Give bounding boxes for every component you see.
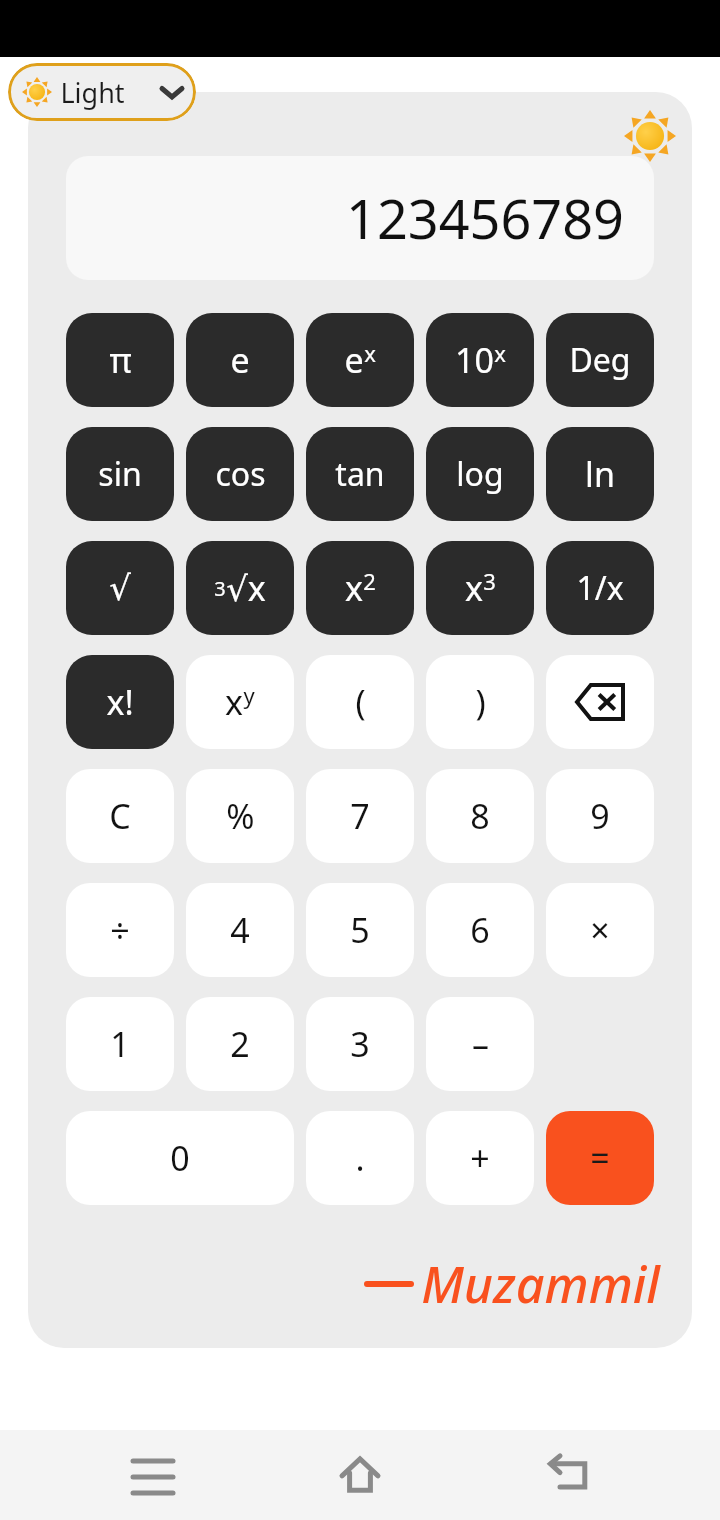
staticText: 3 bbox=[350, 1021, 370, 1067]
button[interactable]: log bbox=[426, 427, 534, 521]
staticText: – bbox=[472, 1021, 489, 1067]
staticText: √x bbox=[226, 565, 266, 611]
button[interactable]: tan bbox=[306, 427, 414, 521]
staticText: C bbox=[109, 793, 131, 839]
button[interactable]: π bbox=[66, 313, 174, 407]
button[interactable]: e bbox=[306, 313, 414, 407]
staticText: 2 bbox=[363, 566, 376, 596]
button[interactable]: √ bbox=[66, 541, 174, 635]
button[interactable]: 3 bbox=[306, 997, 414, 1091]
button[interactable]: sin bbox=[66, 427, 174, 521]
staticText: x bbox=[364, 338, 376, 368]
staticText: y bbox=[243, 680, 255, 710]
button[interactable]: C bbox=[66, 769, 174, 863]
staticText: x bbox=[494, 338, 506, 368]
staticText: Light bbox=[60, 74, 125, 111]
staticText: √ bbox=[109, 568, 131, 608]
button[interactable]: cos bbox=[186, 427, 294, 521]
staticText: x bbox=[465, 565, 483, 611]
button[interactable]: 1/x bbox=[546, 541, 654, 635]
staticText: Deg bbox=[569, 338, 631, 382]
staticText: e bbox=[230, 337, 250, 383]
button[interactable]: 4 bbox=[186, 883, 294, 977]
button[interactable]: Deg bbox=[546, 313, 654, 407]
staticText: = bbox=[590, 1135, 610, 1181]
button[interactable]: e bbox=[186, 313, 294, 407]
button[interactable]: = bbox=[546, 1111, 654, 1205]
staticText: 2 bbox=[230, 1021, 250, 1067]
button[interactable]: x bbox=[186, 655, 294, 749]
staticText: 10 bbox=[455, 337, 494, 383]
staticText: Muzammil bbox=[421, 1250, 660, 1318]
staticText: % bbox=[226, 793, 255, 839]
staticText: sin bbox=[98, 452, 142, 496]
staticText: π bbox=[109, 337, 132, 383]
staticText: x bbox=[225, 679, 243, 725]
staticText: ( bbox=[355, 679, 366, 725]
button[interactable]: . bbox=[306, 1111, 414, 1205]
staticText: x bbox=[345, 565, 363, 611]
button[interactable]: 1 bbox=[66, 997, 174, 1091]
staticText: ) bbox=[475, 679, 486, 725]
button[interactable]: x bbox=[426, 541, 534, 635]
staticText: 7 bbox=[350, 793, 370, 839]
button[interactable]: x bbox=[306, 541, 414, 635]
button[interactable]: 10 bbox=[426, 313, 534, 407]
button[interactable]: ÷ bbox=[66, 883, 174, 977]
staticText: . bbox=[355, 1135, 365, 1181]
button[interactable]: 6 bbox=[426, 883, 534, 977]
staticText: 0 bbox=[170, 1135, 190, 1181]
button[interactable]: Light bbox=[8, 63, 196, 121]
button[interactable]: 8 bbox=[426, 769, 534, 863]
button[interactable]: x! bbox=[66, 655, 174, 749]
staticText: e bbox=[344, 337, 364, 383]
staticText: 3 bbox=[483, 566, 496, 596]
staticText: cos bbox=[215, 452, 266, 496]
staticText: 9 bbox=[590, 793, 610, 839]
staticText: 123456789 bbox=[346, 181, 624, 255]
staticText: 8 bbox=[470, 793, 490, 839]
staticText: + bbox=[470, 1135, 490, 1181]
button[interactable]: 5 bbox=[306, 883, 414, 977]
button[interactable]: × bbox=[546, 883, 654, 977]
button[interactable]: 3 bbox=[186, 541, 294, 635]
button[interactable]: Backspace bbox=[546, 655, 654, 749]
button[interactable]: 9 bbox=[546, 769, 654, 863]
button[interactable]: ln bbox=[546, 427, 654, 521]
staticText: 4 bbox=[230, 907, 250, 953]
button[interactable]: % bbox=[186, 769, 294, 863]
staticText: 3 bbox=[214, 575, 226, 602]
staticText: ln bbox=[585, 451, 615, 497]
staticText: x! bbox=[106, 679, 134, 725]
button[interactable]: 0 bbox=[66, 1111, 294, 1205]
staticText: × bbox=[590, 907, 610, 953]
staticText: log bbox=[456, 452, 504, 496]
staticText: tan bbox=[335, 452, 385, 496]
button[interactable]: Recent apps bbox=[98, 1430, 208, 1520]
staticText: 5 bbox=[350, 907, 370, 953]
button[interactable]: 2 bbox=[186, 997, 294, 1091]
button[interactable]: Home bbox=[305, 1430, 415, 1520]
staticText: 6 bbox=[470, 907, 490, 953]
button[interactable]: 7 bbox=[306, 769, 414, 863]
button[interactable]: ) bbox=[426, 655, 534, 749]
staticText: 1/x bbox=[576, 566, 624, 610]
button[interactable]: + bbox=[426, 1111, 534, 1205]
button[interactable]: – bbox=[426, 997, 534, 1091]
button[interactable]: ( bbox=[306, 655, 414, 749]
button[interactable]: Back bbox=[513, 1430, 623, 1520]
staticText: ÷ bbox=[110, 907, 130, 953]
staticText: 1 bbox=[110, 1021, 130, 1067]
